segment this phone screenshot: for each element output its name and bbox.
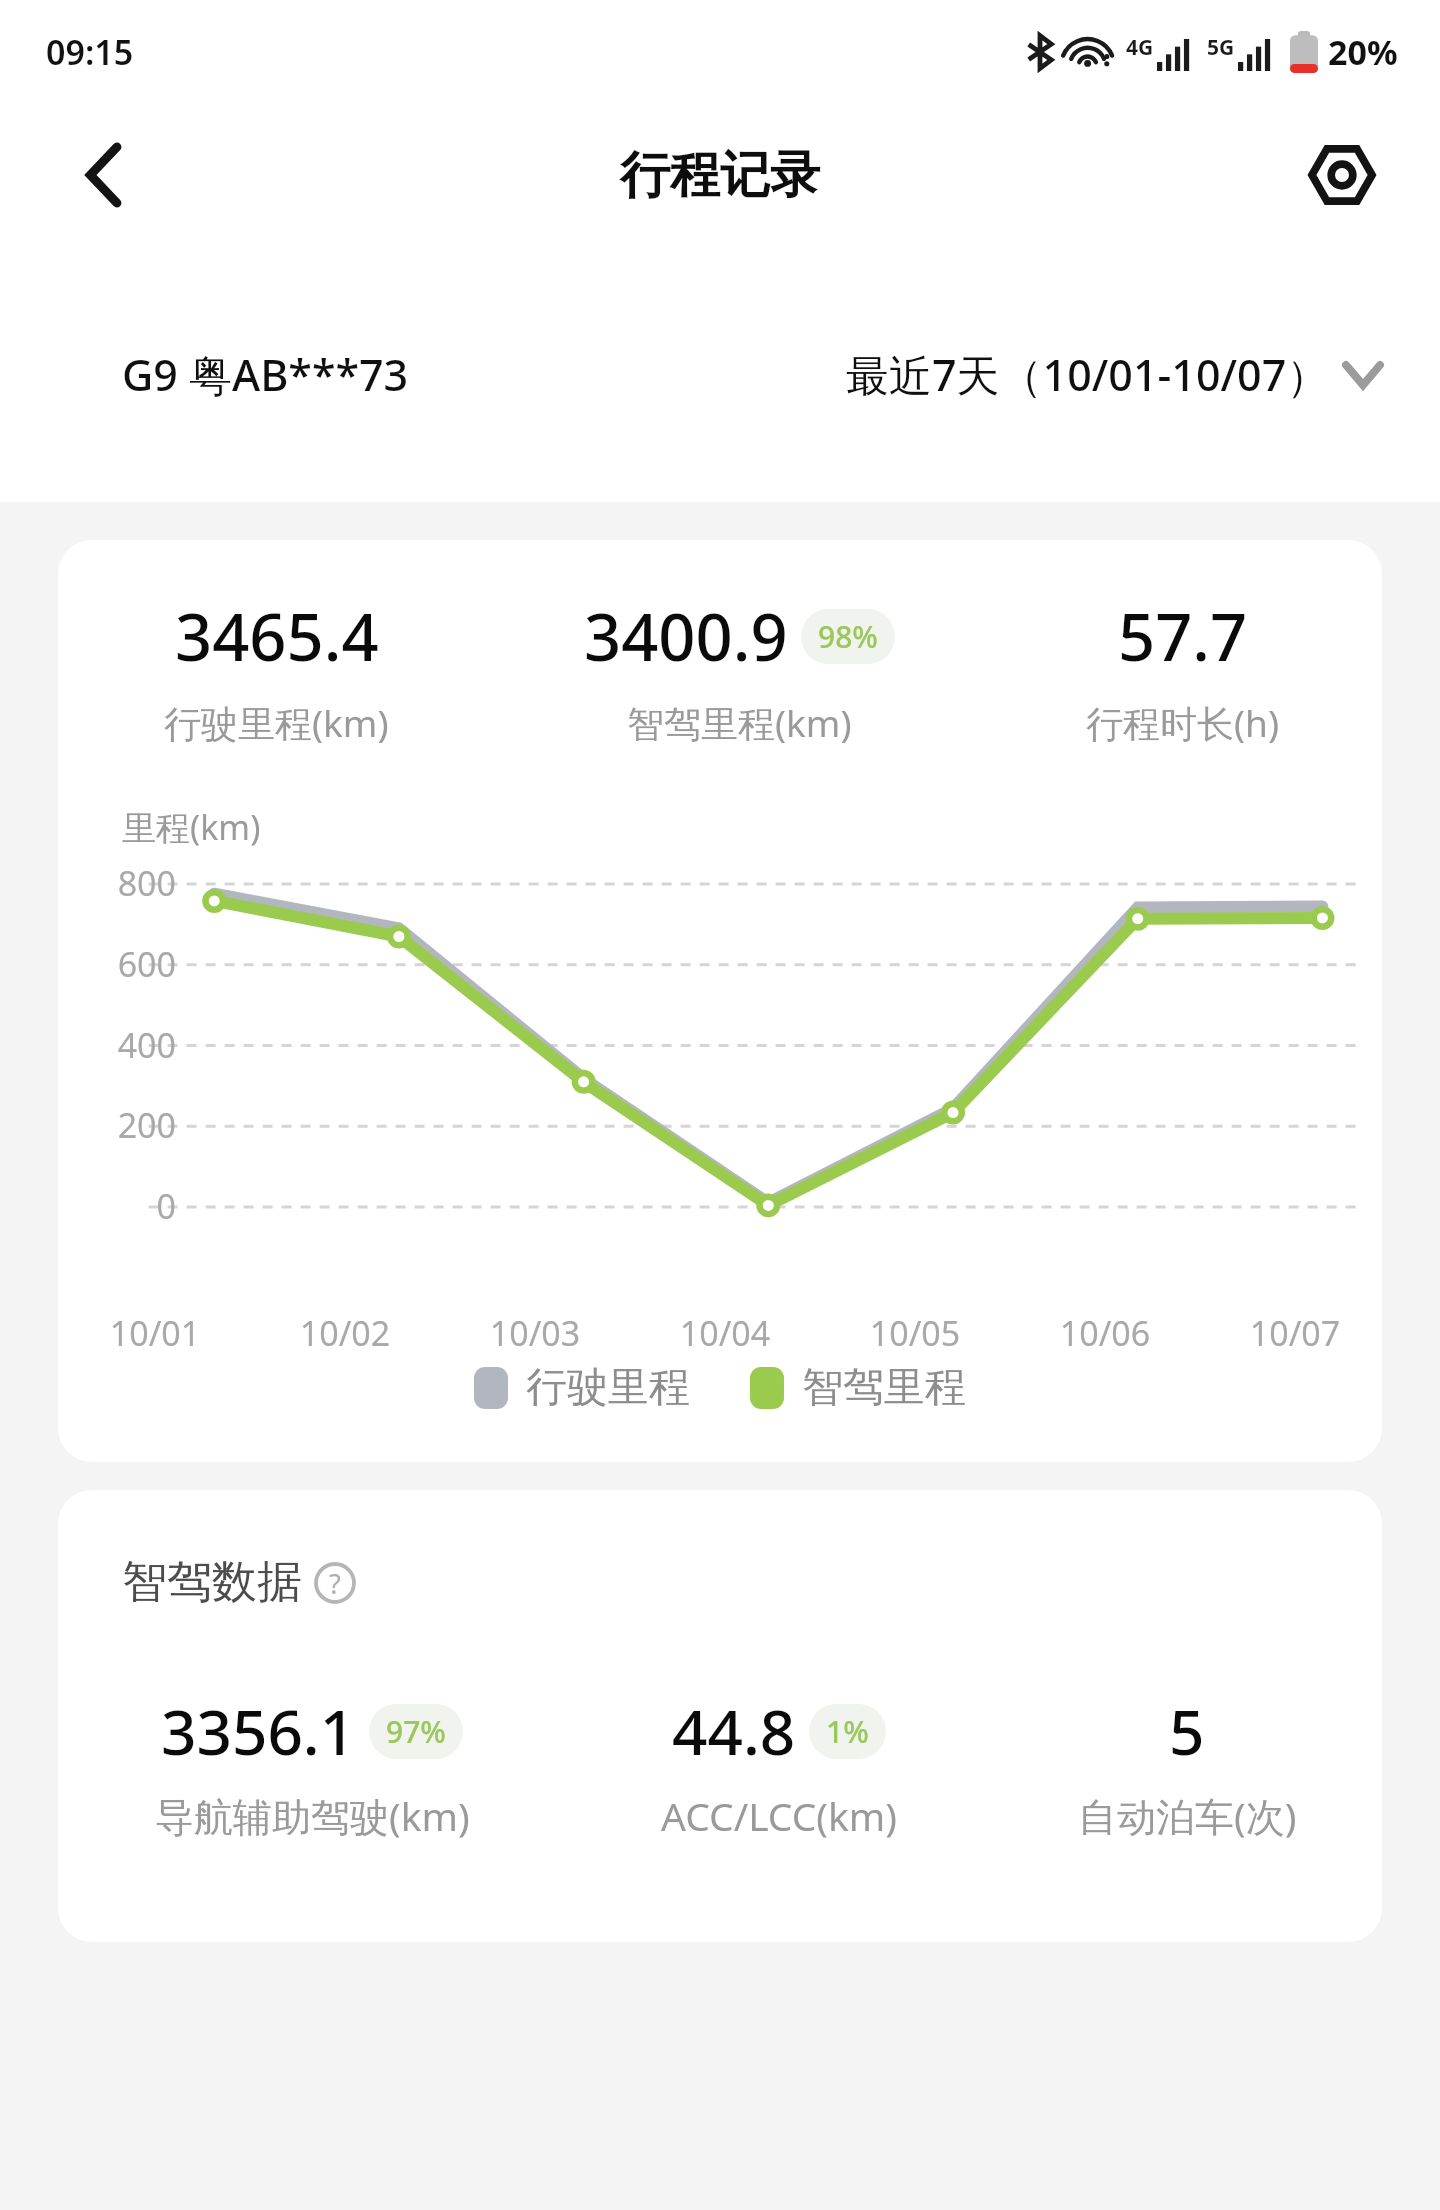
staticText: 行驶里程(km) [164,697,389,748]
staticText: 09:15 [46,29,134,75]
staticText: 智驾里程(km) [627,697,852,748]
staticText: 导航辅助驾驶(km) [155,1789,470,1842]
staticText: ACC/LCC(km) [661,1789,898,1842]
staticText: 5G [1207,33,1235,62]
button[interactable]: Back [62,133,146,217]
staticText: 10/03 [460,1310,610,1356]
staticText: 里程(km) [122,804,261,850]
button[interactable]: 智驾数据 [122,1554,356,1611]
staticText: 3356.1 [161,1689,356,1773]
staticText: 5 [1169,1689,1205,1773]
staticText: 智驾数据 [122,1554,302,1611]
button[interactable]: G9 粤AB***73 [122,345,409,404]
staticText: 200 [96,1102,176,1148]
staticText: 10/01 [80,1310,230,1356]
staticText: 最近7天（10/01-10/07） [846,345,1330,404]
staticText: 行驶里程 [526,1362,690,1414]
staticText: 0 [96,1183,176,1229]
staticText: 97% [386,1711,446,1752]
staticText: 10/06 [1030,1310,1180,1356]
staticText: 98% [818,616,878,657]
staticText: 1% [826,1711,869,1752]
staticText: 3465.4 [175,592,379,681]
staticText: 10/07 [1220,1310,1370,1356]
staticText: 自动泊车(次) [1078,1789,1297,1842]
staticText: 600 [96,941,176,987]
button[interactable]: Settings [1298,131,1386,219]
staticText: 800 [96,860,176,906]
staticText: 3400.9 [584,592,788,681]
staticText: 10/05 [840,1310,990,1356]
staticText: 行程时长(h) [1086,697,1280,748]
staticText: 57.7 [1118,592,1248,681]
staticText: 10/04 [650,1310,800,1356]
staticText: 行程记录 [620,144,820,207]
staticText: 20% [1328,29,1398,75]
staticText: 10/02 [270,1310,420,1356]
button[interactable]: 最近7天（10/01-10/07） [846,345,1382,404]
staticText: 智驾里程 [802,1362,966,1414]
staticText: 400 [96,1022,176,1068]
staticText: 44.8 [672,1689,796,1773]
staticText: ? [329,1565,341,1602]
staticText: 4G [1126,33,1154,62]
